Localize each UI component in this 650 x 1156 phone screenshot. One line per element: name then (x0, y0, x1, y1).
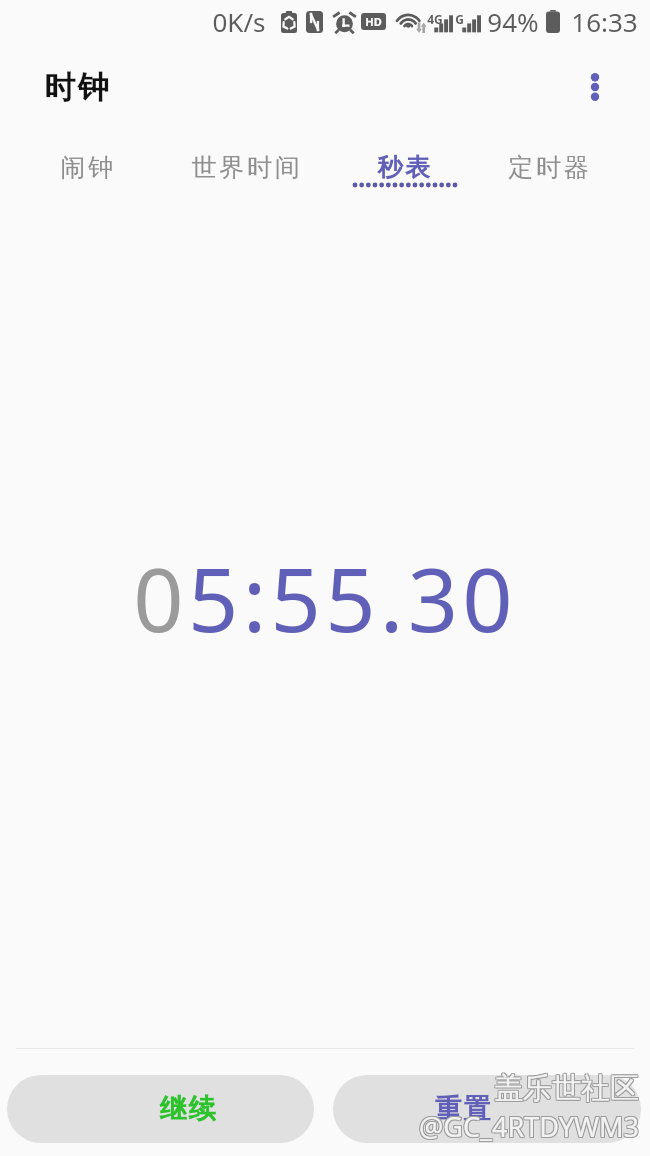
button[interactable]: 定时器 (475, 130, 625, 200)
staticText: @GC_4RTDYWM3 (418, 1109, 638, 1146)
staticText: @GC_4RTDYWM3 (419, 1108, 639, 1145)
button[interactable]: 闹钟 (13, 130, 163, 200)
staticText: @GC_4RTDYWM3 (419, 1109, 639, 1146)
staticText: 闹钟 (60, 152, 116, 183)
staticText: 0K/s (212, 4, 266, 39)
staticText: 时钟 (43, 68, 110, 107)
staticText: 16:33 (571, 4, 638, 39)
staticText: @GC_4RTDYWM3 (420, 1108, 640, 1145)
button[interactable]: 继续 (7, 1075, 314, 1143)
staticText: G (455, 11, 464, 27)
staticText: 继续 (159, 1092, 216, 1126)
staticText: 定时器 (508, 152, 592, 183)
staticText: 重置 (434, 1092, 491, 1126)
button[interactable]: 重置 (333, 1075, 641, 1143)
staticText: @GC_4RTDYWM3 (418, 1108, 638, 1145)
staticText: 0 (133, 538, 188, 658)
staticText: @GC_4RTDYWM3 (420, 1107, 640, 1144)
staticText: 盖乐世社区 (494, 1069, 639, 1106)
staticText: 94% (487, 4, 539, 39)
staticText: 秒表 (377, 152, 433, 183)
staticText: 盖乐世社区 (495, 1071, 640, 1108)
button[interactable]: 世界时间 (172, 130, 322, 200)
staticText: 盖乐世社区 (493, 1071, 638, 1108)
button[interactable]: 秒表 (330, 130, 480, 200)
staticText: 盖乐世社区 (493, 1070, 638, 1107)
button[interactable]: More options (575, 67, 615, 107)
staticText: 盖乐世社区 (494, 1070, 639, 1107)
staticText: 盖乐世社区 (495, 1069, 640, 1106)
staticText: @GC_4RTDYWM3 (420, 1109, 640, 1146)
staticText: HD (365, 14, 382, 29)
staticText: 盖乐世社区 (494, 1071, 639, 1108)
staticText: 5:55.30 (188, 538, 517, 658)
staticText: 盖乐世社区 (495, 1070, 640, 1107)
staticText: 盖乐世社区 (493, 1069, 638, 1106)
staticText: 4G (427, 11, 443, 27)
staticText: @GC_4RTDYWM3 (418, 1107, 638, 1144)
staticText: 世界时间 (191, 152, 303, 183)
staticText: @GC_4RTDYWM3 (419, 1107, 639, 1144)
